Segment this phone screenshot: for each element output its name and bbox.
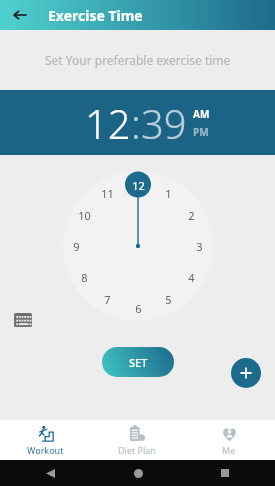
button[interactable]: 2 <box>180 207 202 223</box>
staticText: 7 <box>104 292 111 307</box>
button[interactable]: 1 <box>157 185 179 201</box>
staticText: Workout <box>27 444 64 456</box>
button[interactable]: 8 <box>73 269 95 285</box>
button[interactable]: Home <box>128 463 148 483</box>
staticText: 11 <box>101 186 114 201</box>
button[interactable]: 12 <box>127 177 149 193</box>
button[interactable]: Back <box>40 463 60 483</box>
button[interactable]: AM <box>193 107 210 121</box>
button[interactable]: 12 <box>85 96 131 150</box>
staticText: 6 <box>135 301 142 316</box>
staticText: 9 <box>73 239 80 254</box>
staticText: 3 <box>196 239 203 254</box>
button[interactable]: Add <box>231 358 261 388</box>
staticText: 12 <box>132 178 145 193</box>
button[interactable]: Back <box>8 3 32 27</box>
staticText: 4 <box>188 270 195 285</box>
staticText: 1 <box>165 186 172 201</box>
staticText: Set Your preferable exercise time <box>45 52 231 68</box>
button[interactable]: Switch to keyboard input <box>14 313 32 327</box>
button[interactable]: SET <box>102 347 174 377</box>
button[interactable]: Diet Plan <box>91 420 183 460</box>
button[interactable]: 10 <box>73 207 95 223</box>
staticText: 10 <box>78 208 91 223</box>
staticText: 8 <box>81 270 88 285</box>
staticText: Exercise Time <box>48 6 143 25</box>
button[interactable]: 6 <box>127 300 149 316</box>
button[interactable]: Me <box>183 420 275 460</box>
button[interactable]: 9 <box>65 238 87 254</box>
button[interactable]: PM <box>193 125 209 139</box>
staticText: 5 <box>165 292 172 307</box>
button[interactable]: Workout <box>0 420 91 460</box>
button[interactable]: 4 <box>180 269 202 285</box>
staticText: 2 <box>188 208 195 223</box>
button[interactable]: 11 <box>96 185 118 201</box>
staticText: SET <box>129 355 148 370</box>
button[interactable]: Clock face <box>63 171 213 321</box>
button[interactable]: 3 <box>188 238 210 254</box>
button[interactable]: Recent apps <box>215 463 235 483</box>
button[interactable]: 39 <box>141 96 187 150</box>
staticText: Me <box>222 444 236 456</box>
button[interactable]: 7 <box>96 291 118 307</box>
button[interactable]: 5 <box>157 291 179 307</box>
staticText: : <box>131 96 141 150</box>
staticText: Diet Plan <box>118 444 156 456</box>
